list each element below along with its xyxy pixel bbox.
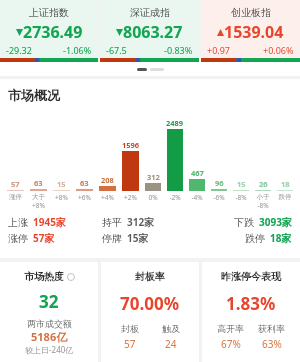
staticText: -67.5 — [106, 44, 127, 56]
staticText: -2% — [164, 193, 186, 202]
button[interactable]: 封板率 — [101, 262, 199, 362]
staticText: 467 — [191, 168, 204, 178]
staticText: 1596 — [122, 140, 140, 150]
staticText: 跌停 — [245, 232, 265, 245]
staticText: -0.83% — [164, 44, 193, 56]
staticText: 获利率 — [258, 323, 285, 334]
staticText: 两市成交额 — [27, 318, 72, 329]
staticText: 57家 — [33, 231, 55, 245]
staticText: 涨停 — [8, 232, 28, 245]
staticText: 63 — [34, 178, 43, 188]
staticText: 1539.04 — [224, 21, 284, 43]
staticText: 67% — [221, 337, 241, 351]
staticText: 3093家 — [259, 215, 292, 229]
staticText: 18 — [281, 179, 290, 189]
staticText: -1.06% — [63, 44, 92, 56]
staticText: 32 — [39, 290, 59, 313]
staticText: 5186亿 — [31, 329, 68, 344]
staticText: 18家 — [270, 231, 292, 245]
staticText: 小于 -8% — [252, 193, 274, 210]
staticText: +0.06% — [263, 44, 294, 56]
staticText: +6% — [73, 193, 96, 202]
button[interactable]: 说明 — [67, 273, 75, 281]
staticText: 下跌 — [234, 216, 254, 229]
staticText: -29.32 — [6, 44, 32, 56]
staticText: 上证指数 — [29, 6, 69, 19]
staticText: 2489 — [166, 118, 184, 128]
button[interactable]: 上证指数 — [0, 0, 98, 62]
staticText: +0.97 — [207, 44, 231, 56]
staticText: -8% — [230, 193, 252, 202]
staticText: 1.83% — [226, 292, 276, 315]
staticText: 26 — [259, 179, 268, 189]
staticText: 触及 — [162, 323, 180, 334]
staticText: 停牌 — [102, 232, 122, 245]
staticText: 较上日-240亿 — [25, 344, 74, 355]
staticText: 57 — [11, 179, 20, 189]
staticText: 市场热度 — [24, 270, 64, 283]
staticText: -6% — [208, 193, 230, 202]
staticText: 涨停 — [4, 193, 27, 201]
button[interactable]: 昨涨停今表现 — [202, 262, 300, 362]
staticText: 跌停 — [274, 193, 296, 201]
staticText: 持平 — [102, 216, 122, 229]
staticText: +4% — [96, 193, 119, 202]
staticText: 57 — [124, 337, 136, 351]
staticText: 96 — [215, 178, 224, 188]
staticText: 深证成指 — [130, 6, 170, 19]
staticText: -4% — [186, 193, 208, 202]
staticText: 312家 — [127, 215, 155, 229]
staticText: 上涨 — [8, 216, 28, 229]
staticText: 24 — [165, 337, 177, 351]
staticText: 70.00% — [120, 292, 180, 315]
button[interactable]: 创业板指 — [201, 0, 300, 62]
staticText: 15 — [57, 179, 66, 189]
button[interactable]: 市场热度 — [0, 262, 98, 362]
staticText: 15 — [237, 179, 246, 189]
staticText: 2736.49 — [23, 21, 83, 43]
staticText: 大于 +8% — [27, 193, 50, 210]
staticText: 昨涨停今表现 — [221, 270, 281, 283]
staticText: 312 — [147, 172, 160, 182]
staticText: 市场概况 — [8, 87, 60, 103]
staticText: 208 — [101, 175, 114, 185]
staticText: 63% — [262, 337, 282, 351]
staticText: 封板率 — [135, 270, 165, 283]
staticText: 0% — [142, 193, 164, 202]
staticText: 15家 — [127, 231, 149, 245]
staticText: 8063.27 — [123, 21, 183, 43]
staticText: +2% — [119, 193, 142, 202]
staticText: +8% — [50, 193, 73, 202]
staticText: 创业板指 — [231, 6, 271, 19]
staticText: 1945家 — [33, 215, 66, 229]
staticText: 封板 — [121, 323, 139, 334]
staticText: 63 — [80, 178, 89, 188]
staticText: 高开率 — [217, 323, 244, 334]
button[interactable]: 深证成指 — [100, 0, 199, 62]
